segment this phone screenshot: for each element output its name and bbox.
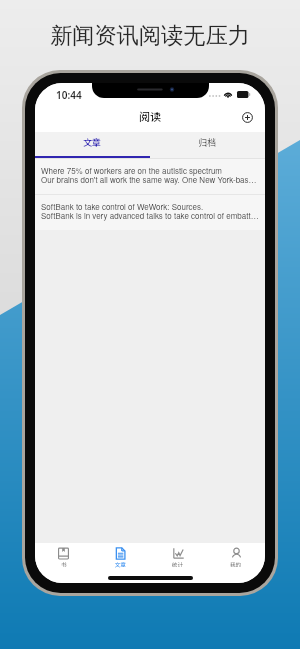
staticText: 新闻资讯阅读无压力 bbox=[0, 22, 300, 50]
staticText: Our brains don't all work the same way. … bbox=[41, 174, 259, 185]
button[interactable]: 我的 bbox=[207, 543, 265, 571]
staticText: 我的 bbox=[230, 561, 242, 569]
staticText: 文章 bbox=[83, 136, 102, 149]
button[interactable]: 文章 bbox=[92, 543, 149, 571]
staticText: 统计 bbox=[172, 561, 184, 569]
staticText: SoftBank is in very advanced talks to ta… bbox=[41, 210, 259, 221]
button[interactable]: Where 75% of workers are on the autistic… bbox=[35, 159, 265, 194]
button[interactable]: SoftBank to take control of WeWork: Sour… bbox=[35, 195, 265, 230]
staticText: 书 bbox=[61, 561, 67, 569]
staticText: SoftBank to take control of WeWork: Sour… bbox=[41, 201, 204, 212]
button[interactable]: 书 bbox=[35, 543, 92, 571]
staticText: 归档 bbox=[198, 136, 217, 149]
button[interactable]: 归档 bbox=[150, 132, 265, 158]
staticText: Where 75% of workers are on the autistic… bbox=[41, 165, 222, 176]
staticText: 文章 bbox=[115, 561, 127, 569]
staticText: 10:44 bbox=[56, 88, 82, 102]
staticText: 阅读 bbox=[139, 108, 161, 124]
button[interactable]: 统计 bbox=[149, 543, 207, 571]
button[interactable]: Add bbox=[238, 108, 256, 126]
button[interactable]: 文章 bbox=[35, 132, 150, 158]
